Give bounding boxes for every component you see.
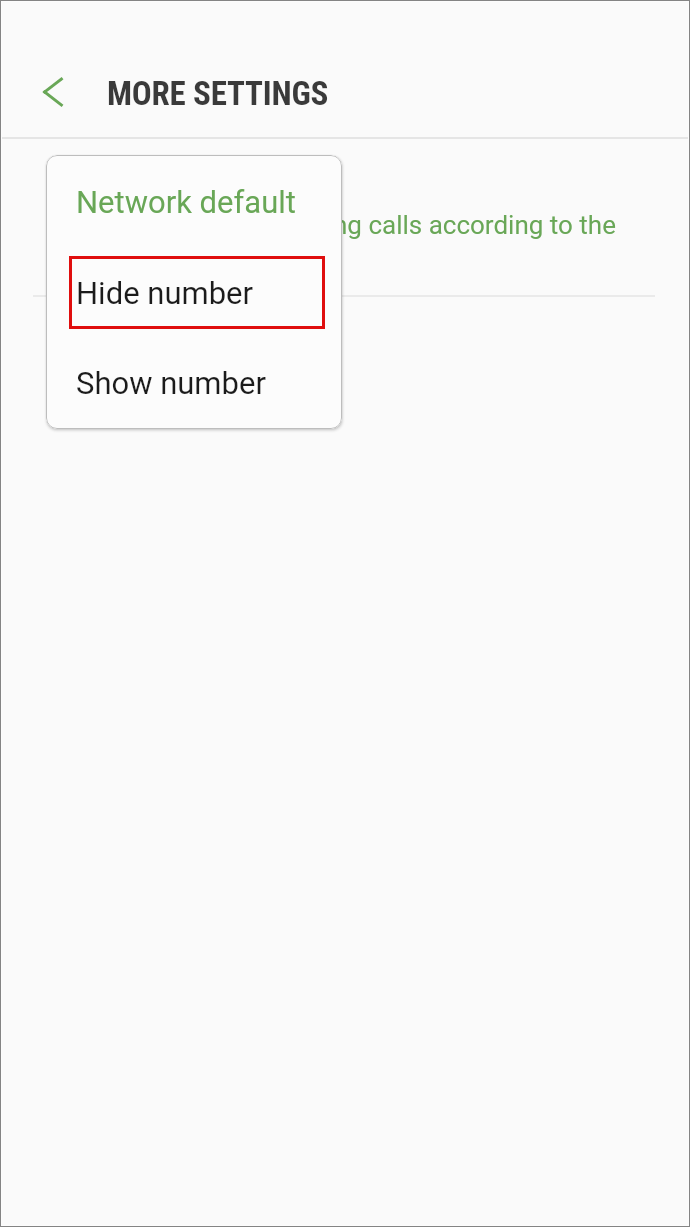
button[interactable]: Show number [46, 338, 342, 428]
staticText: MORE SETTINGS [107, 74, 329, 113]
staticText: Hide number [76, 275, 254, 311]
button[interactable]: Navigate up [21, 60, 85, 124]
button[interactable]: Hide number [46, 248, 342, 338]
staticText: ng calls according to the [333, 210, 616, 240]
staticText: Show number [76, 365, 266, 401]
staticText: Network default [76, 184, 296, 220]
button[interactable]: Network default [46, 155, 342, 248]
